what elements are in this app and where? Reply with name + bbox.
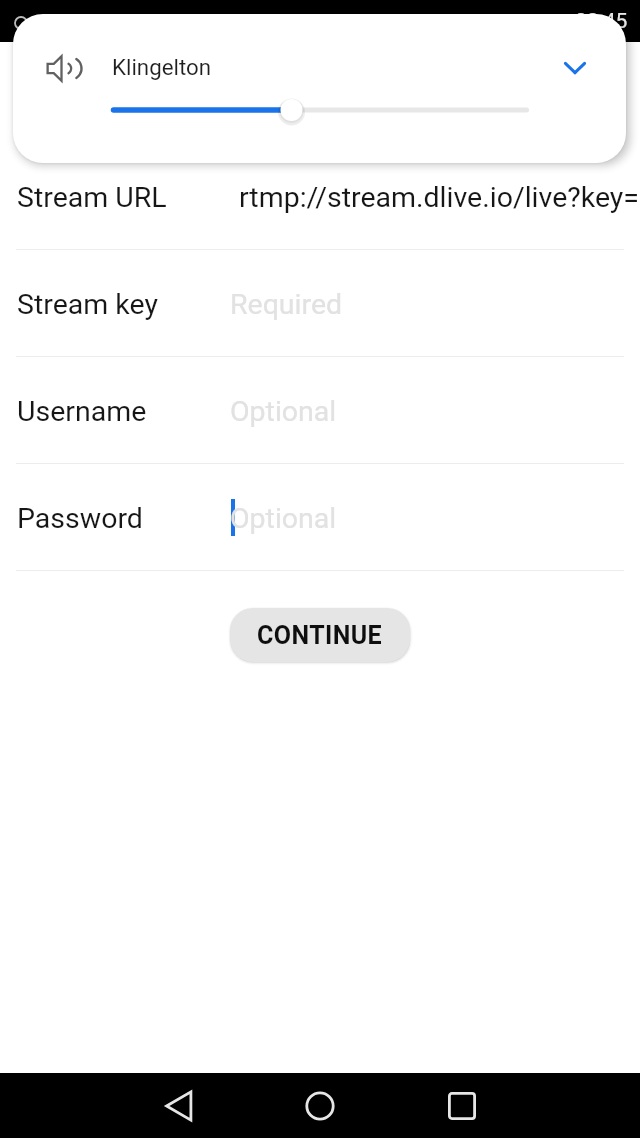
button[interactable]: Stream URL xyxy=(0,143,640,250)
staticText: Klingelton xyxy=(112,54,212,80)
button[interactable]: Home xyxy=(284,1073,356,1138)
button[interactable]: CONTINUE xyxy=(230,608,410,662)
button[interactable]: Ringtone volume xyxy=(96,80,559,140)
staticText: Stream key xyxy=(17,288,158,321)
button[interactable]: Password xyxy=(0,464,640,571)
staticText: 08:45 xyxy=(575,9,628,34)
staticText: Optional xyxy=(230,502,337,535)
staticText: Password xyxy=(17,502,143,535)
button[interactable]: Back xyxy=(142,1073,214,1138)
button[interactable]: Stream key xyxy=(0,250,640,357)
button[interactable]: Username xyxy=(0,357,640,464)
staticText: rtmp://stream.dlive.io/live?key= xyxy=(239,181,639,214)
staticText: Stream URL xyxy=(17,181,167,214)
button[interactable]: Expand xyxy=(547,39,603,95)
staticText: CONTINUE xyxy=(257,621,383,650)
staticText: Username xyxy=(17,395,147,428)
staticText: Required xyxy=(230,288,343,321)
button[interactable]: Recent apps xyxy=(426,1073,498,1138)
staticText: Optional xyxy=(230,395,337,428)
